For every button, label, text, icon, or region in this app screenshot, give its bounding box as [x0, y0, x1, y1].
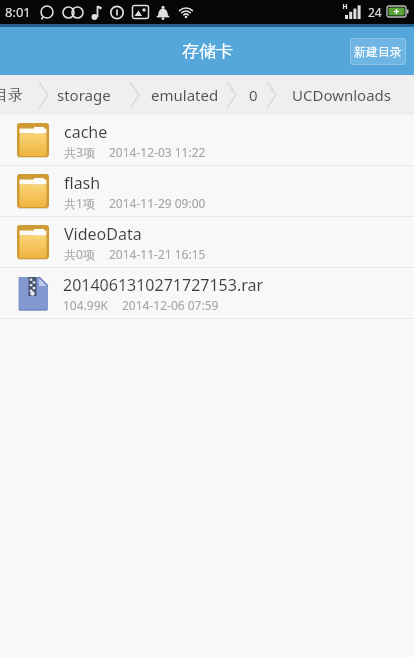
staticText: flash: [64, 172, 101, 194]
staticText: cache: [64, 121, 108, 143]
staticText: 8:01: [5, 3, 31, 21]
staticText: 共0项: [64, 246, 95, 262]
staticText: storage: [57, 85, 111, 105]
button[interactable]: 0: [249, 85, 258, 105]
button[interactable]: emulated: [151, 85, 219, 105]
staticText: emulated: [151, 85, 219, 105]
button[interactable]: VideoData: [0, 217, 414, 267]
staticText: 2014061310271727153.rar: [63, 274, 264, 296]
button[interactable]: flash: [0, 166, 414, 216]
button[interactable]: 目录: [0, 86, 23, 105]
staticText: UCDownloads: [292, 85, 392, 105]
staticText: 104.99K: [63, 297, 108, 313]
staticText: 2014-12-06 07:59: [122, 297, 219, 313]
staticText: 目录: [0, 86, 23, 105]
staticText: 新建目录: [354, 44, 402, 59]
staticText: 共3项: [64, 144, 95, 160]
staticText: 2014-12-03 11:22: [109, 144, 206, 160]
button[interactable]: 新建目录: [350, 38, 406, 65]
staticText: 2014-11-29 09:00: [109, 195, 206, 211]
staticText: 共1项: [64, 195, 95, 211]
staticText: 24: [368, 4, 382, 20]
button[interactable]: storage: [57, 85, 111, 105]
staticText: 2014-11-21 16:15: [109, 246, 206, 262]
staticText: 存储卡: [182, 41, 233, 62]
staticText: 0: [249, 85, 258, 105]
button[interactable]: cache: [0, 115, 414, 165]
button[interactable]: 2014061310271727153.rar: [0, 268, 414, 318]
button[interactable]: UCDownloads: [292, 85, 392, 105]
staticText: VideoData: [64, 223, 142, 245]
